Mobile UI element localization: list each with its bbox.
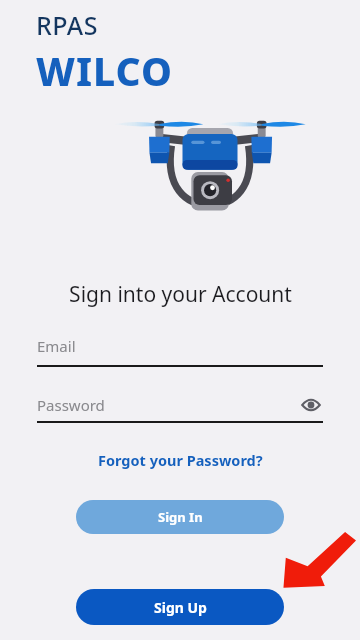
- staticText: Email: [37, 336, 76, 356]
- staticText: Password: [37, 395, 105, 415]
- button[interactable]: Email: [37, 336, 323, 367]
- staticText: RPAS: [36, 8, 98, 42]
- button[interactable]: Sign In: [76, 500, 284, 534]
- staticText: Forgot your Password?: [98, 450, 263, 470]
- staticText: Sign In: [158, 508, 203, 526]
- button[interactable]: Password: [37, 393, 323, 423]
- button[interactable]: Forgot your Password?: [92, 447, 269, 473]
- staticText: Sign into your Account: [69, 280, 292, 309]
- button[interactable]: Show password: [299, 393, 323, 417]
- staticText: Sign Up: [154, 598, 207, 617]
- staticText: WILCO: [36, 44, 173, 97]
- button[interactable]: Sign Up: [76, 589, 284, 625]
